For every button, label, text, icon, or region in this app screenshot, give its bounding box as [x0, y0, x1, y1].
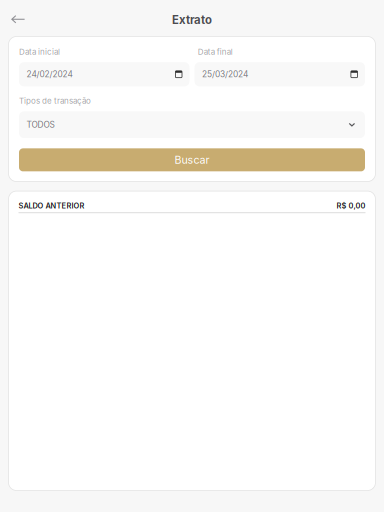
staticText: R$ 0,00	[336, 201, 365, 210]
staticText: 24/02/2024	[26, 69, 72, 79]
button[interactable]: 25/03/2024	[194, 62, 365, 86]
staticText: SALDO ANTERIOR	[18, 201, 84, 210]
button[interactable]: Back	[0, 7, 35, 29]
button[interactable]: 24/02/2024	[19, 62, 189, 86]
staticText: 25/03/2024	[202, 69, 248, 79]
staticText: TODOS	[26, 120, 54, 130]
staticText: Data final	[198, 47, 233, 57]
button[interactable]: Buscar	[19, 148, 365, 171]
staticText: Buscar	[174, 153, 209, 166]
staticText: Data inicial	[19, 47, 60, 57]
button[interactable]: TODOS	[19, 111, 365, 138]
staticText: Extrato	[172, 13, 212, 27]
staticText: Tipos de transação	[19, 96, 91, 106]
